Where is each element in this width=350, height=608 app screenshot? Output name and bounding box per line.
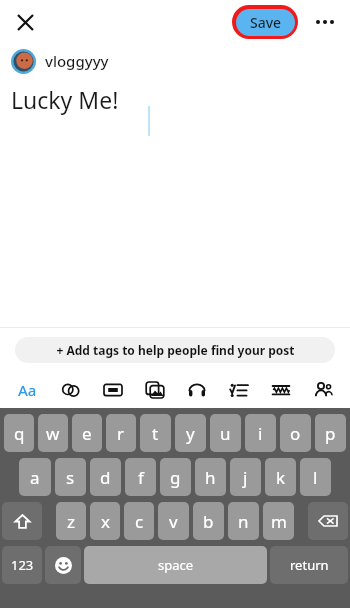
button[interactable]: o: [280, 414, 311, 452]
button[interactable]: d: [90, 458, 121, 496]
staticText: p: [325, 422, 336, 445]
button[interactable]: p: [315, 414, 346, 452]
button[interactable]: t: [140, 414, 171, 452]
button[interactable]: + Add tags to help people find your post: [15, 337, 335, 363]
button[interactable]: n: [228, 502, 259, 540]
button[interactable]: c: [124, 502, 154, 540]
button[interactable]: Emoji: [45, 546, 81, 584]
button[interactable]: l: [300, 458, 331, 496]
button[interactable]: e: [72, 414, 102, 452]
staticText: f: [138, 466, 144, 489]
button[interactable]: GIF: [92, 372, 134, 408]
button[interactable]: r: [106, 414, 136, 452]
button[interactable]: m: [263, 502, 294, 540]
staticText: i: [258, 422, 263, 445]
button[interactable]: Audio: [176, 372, 218, 408]
button[interactable]: h: [195, 458, 226, 496]
staticText: Save: [250, 13, 282, 32]
staticText: h: [205, 466, 216, 489]
button[interactable]: More options: [308, 5, 342, 39]
button[interactable]: Link: [49, 372, 92, 408]
button[interactable]: Text format: [6, 372, 49, 408]
button[interactable]: return: [270, 546, 348, 584]
button[interactable]: Tag people: [302, 372, 344, 408]
staticText: vloggyyy: [45, 51, 109, 71]
button[interactable]: z: [56, 502, 86, 540]
staticText: Aa: [18, 380, 37, 400]
button[interactable]: g: [160, 458, 191, 496]
button[interactable]: Close: [10, 7, 40, 37]
button[interactable]: f: [125, 458, 156, 496]
staticText: e: [82, 422, 92, 445]
staticText: k: [276, 466, 286, 489]
staticText: j: [243, 466, 248, 489]
button[interactable]: a: [19, 458, 51, 496]
staticText: o: [290, 422, 301, 445]
button[interactable]: space: [84, 546, 267, 584]
staticText: t: [152, 422, 159, 445]
button[interactable]: w: [38, 414, 68, 452]
staticText: space: [158, 556, 194, 574]
staticText: w: [46, 422, 60, 445]
button[interactable]: u: [210, 414, 241, 452]
button[interactable]: Photo: [134, 372, 176, 408]
button[interactable]: Save: [236, 9, 295, 36]
staticText: b: [203, 510, 214, 533]
staticText: g: [170, 466, 181, 489]
staticText: s: [66, 466, 75, 489]
button[interactable]: Shift: [2, 502, 42, 540]
button[interactable]: vloggyyy: [0, 44, 350, 78]
staticText: u: [220, 422, 231, 445]
staticText: m: [271, 510, 287, 533]
staticText: c: [135, 510, 144, 533]
staticText: a: [30, 466, 40, 489]
button[interactable]: x: [90, 502, 120, 540]
button[interactable]: s: [55, 458, 86, 496]
staticText: l: [313, 466, 318, 489]
staticText: return: [290, 556, 329, 574]
button[interactable]: Backspace: [308, 502, 348, 540]
button[interactable]: j: [230, 458, 261, 496]
staticText: z: [67, 510, 75, 533]
staticText: x: [101, 510, 110, 533]
button[interactable]: Poll: [218, 372, 260, 408]
staticText: v: [169, 510, 178, 533]
button[interactable]: Drawing: [260, 372, 302, 408]
staticText: 123: [11, 556, 34, 574]
button[interactable]: k: [265, 458, 296, 496]
staticText: q: [14, 422, 25, 445]
button[interactable]: v: [158, 502, 189, 540]
button[interactable]: b: [193, 502, 224, 540]
staticText: r: [117, 422, 125, 445]
staticText: n: [238, 510, 249, 533]
staticText: d: [100, 466, 111, 489]
staticText: y: [186, 422, 195, 445]
staticText: Lucky Me!: [11, 84, 119, 115]
button[interactable]: y: [175, 414, 206, 452]
button[interactable]: i: [245, 414, 276, 452]
button[interactable]: q: [4, 414, 34, 452]
button[interactable]: Numbers: [2, 546, 42, 584]
staticText: + Add tags to help people find your post: [56, 342, 295, 358]
